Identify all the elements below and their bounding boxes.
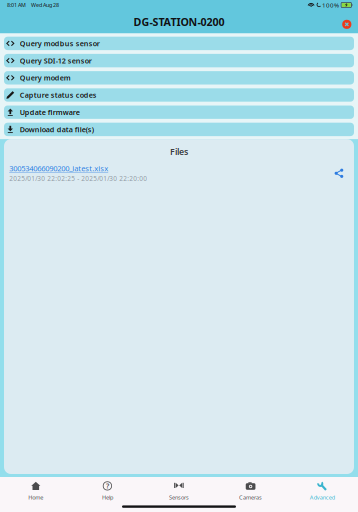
staticText: Home xyxy=(28,493,43,501)
staticText: DG-STATION-0200 xyxy=(133,14,224,29)
button[interactable]: Advanced xyxy=(286,481,358,501)
button[interactable]: Share file xyxy=(333,168,344,178)
staticText: Sensors xyxy=(169,493,189,501)
staticText: 8:01 AM xyxy=(7,1,26,9)
button[interactable]: ? xyxy=(72,481,143,501)
button[interactable]: Query modem xyxy=(4,71,354,84)
button[interactable]: Query SDI-12 sensor xyxy=(4,54,354,67)
button[interactable]: Capture status codes xyxy=(4,88,354,102)
staticText: Update firmware xyxy=(20,107,80,117)
staticText: Query modbus sensor xyxy=(20,38,100,48)
staticText: Capture status codes xyxy=(20,90,97,100)
button[interactable]: 300534066090200_latest.xlsx xyxy=(9,163,108,173)
staticText: Download data file(s) xyxy=(20,124,94,134)
button[interactable]: Home xyxy=(0,481,72,501)
button[interactable]: Cameras xyxy=(215,481,286,501)
button[interactable]: Query modbus sensor xyxy=(4,37,354,50)
staticText: 2025/01/30 22:02:25 - 2025/01/30 22:20:0… xyxy=(9,174,147,183)
staticText: Advanced xyxy=(310,493,335,501)
staticText: Files xyxy=(170,146,188,158)
staticText: Help xyxy=(102,493,113,501)
staticText: 300534066090200_latest.xlsx xyxy=(9,163,108,173)
staticText: 100% xyxy=(322,1,339,9)
staticText: Cameras xyxy=(239,493,262,501)
staticText: Wed Aug 28 xyxy=(31,1,59,9)
staticText: Query modem xyxy=(20,73,71,83)
button[interactable]: Close xyxy=(342,19,352,29)
button[interactable]: Sensors xyxy=(143,481,215,501)
button[interactable]: Download data file(s) xyxy=(4,123,354,136)
staticText: ? xyxy=(106,481,109,491)
staticText: Query SDI-12 sensor xyxy=(20,56,92,65)
button[interactable]: Update firmware xyxy=(4,105,354,119)
